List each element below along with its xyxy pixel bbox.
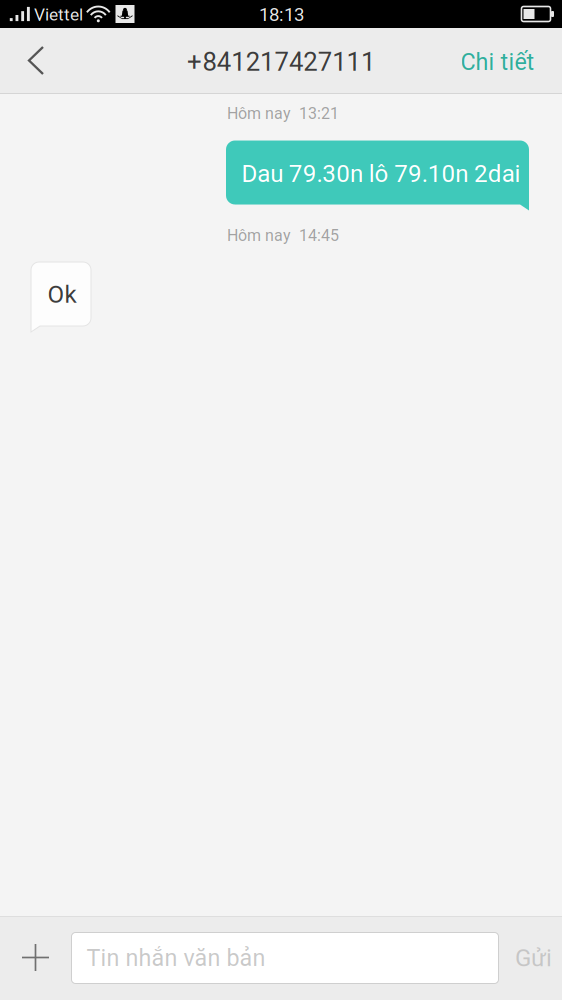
staticText: +841217427111 <box>187 47 375 77</box>
staticText: Viettel <box>34 4 83 25</box>
staticText: Chi tiết <box>460 48 534 76</box>
button[interactable]: Back <box>0 28 72 93</box>
staticText: Hôm nay 13:21 <box>227 104 339 123</box>
button[interactable]: Gửi <box>502 916 562 1000</box>
button[interactable]: Chi tiết <box>442 29 552 94</box>
staticText: Dau 79.30n lô 79.10n 2dai <box>241 160 520 188</box>
staticText: Tin nhắn văn bản <box>86 944 265 972</box>
staticText: Hôm nay 14:45 <box>227 226 339 245</box>
staticText: Ok <box>47 280 76 309</box>
staticText: Gửi <box>515 944 552 972</box>
button[interactable]: Add attachment <box>0 915 70 999</box>
staticText: 18:13 <box>259 4 304 25</box>
